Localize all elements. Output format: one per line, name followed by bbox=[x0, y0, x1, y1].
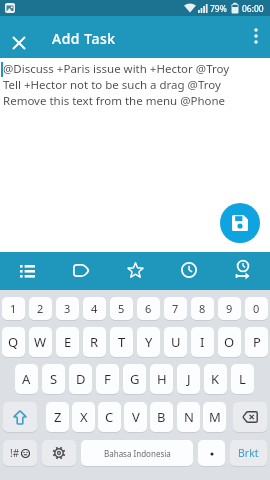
staticText: 4 bbox=[91, 301, 98, 316]
staticText: B bbox=[157, 408, 166, 426]
button[interactable]: L bbox=[231, 364, 254, 394]
button[interactable]: 8 bbox=[191, 297, 214, 320]
button[interactable]: T bbox=[110, 327, 133, 357]
staticText: V bbox=[132, 408, 140, 426]
staticText: J bbox=[187, 370, 191, 388]
staticText: Z bbox=[54, 408, 62, 426]
staticText: 3 bbox=[64, 301, 71, 316]
staticText: W bbox=[34, 333, 47, 351]
staticText: Q bbox=[8, 333, 19, 351]
button[interactable]: V bbox=[124, 402, 147, 432]
staticText: F bbox=[104, 370, 111, 388]
button[interactable]: F bbox=[96, 364, 119, 394]
button[interactable]: Y bbox=[137, 327, 160, 357]
staticText: H bbox=[157, 370, 167, 388]
staticText: 1 bbox=[10, 301, 17, 316]
button[interactable]: E bbox=[56, 327, 79, 357]
staticText: 7 bbox=[172, 301, 179, 316]
button[interactable]: 1 bbox=[2, 297, 25, 320]
button[interactable] bbox=[229, 256, 257, 284]
button[interactable]: A bbox=[15, 364, 38, 394]
button[interactable]: 4 bbox=[83, 297, 106, 320]
button[interactable]: I bbox=[191, 327, 214, 357]
staticText: 06:00 bbox=[242, 3, 264, 15]
staticText: U bbox=[171, 333, 181, 351]
staticText: E bbox=[64, 333, 72, 351]
staticText: M bbox=[209, 408, 221, 426]
staticText: G bbox=[130, 370, 140, 388]
button[interactable] bbox=[67, 256, 95, 284]
button[interactable] bbox=[175, 256, 203, 284]
button[interactable] bbox=[220, 203, 260, 243]
staticText: O bbox=[224, 333, 235, 351]
button[interactable]: 6 bbox=[137, 297, 160, 320]
button[interactable]: D bbox=[69, 364, 92, 394]
button[interactable]: R bbox=[83, 327, 106, 357]
button[interactable]: G bbox=[123, 364, 146, 394]
staticText: S bbox=[50, 370, 58, 388]
staticText: T bbox=[118, 333, 126, 351]
button[interactable] bbox=[233, 402, 267, 432]
button[interactable]: B bbox=[150, 402, 173, 432]
staticText: 2 bbox=[37, 301, 44, 316]
staticText: I bbox=[200, 333, 205, 351]
button[interactable]: H bbox=[150, 364, 173, 394]
staticText: Remove this text from the menu @Phone bbox=[3, 93, 226, 109]
button[interactable]: Z bbox=[46, 402, 69, 432]
button[interactable]: P bbox=[245, 327, 268, 357]
button[interactable] bbox=[6, 30, 32, 56]
staticText: 8 bbox=[199, 301, 206, 316]
button[interactable]: Bahasa Indonesia bbox=[81, 440, 193, 466]
button[interactable]: 5 bbox=[110, 297, 133, 320]
staticText: !# bbox=[10, 446, 20, 460]
button[interactable]: !# bbox=[3, 440, 37, 466]
staticText: A bbox=[22, 370, 31, 388]
button[interactable]: 2 bbox=[29, 297, 52, 320]
button[interactable]: U bbox=[164, 327, 187, 357]
staticText: D bbox=[76, 370, 86, 388]
staticText: R bbox=[90, 333, 99, 351]
staticText: L bbox=[239, 370, 246, 388]
button[interactable]: O bbox=[218, 327, 241, 357]
button[interactable]: J bbox=[177, 364, 200, 394]
button[interactable]: N bbox=[177, 402, 200, 432]
staticText: P bbox=[253, 333, 261, 351]
staticText: C bbox=[105, 408, 114, 426]
button[interactable]: 7 bbox=[164, 297, 187, 320]
button[interactable] bbox=[13, 256, 41, 284]
staticText: X bbox=[80, 408, 88, 426]
button[interactable] bbox=[121, 256, 149, 284]
staticText: Tell +Hector not to be such a drag @Troy bbox=[3, 77, 221, 93]
button[interactable]: 9 bbox=[218, 297, 241, 320]
button[interactable]: M bbox=[203, 402, 226, 432]
button[interactable]: Q bbox=[2, 327, 25, 357]
staticText: 0 bbox=[253, 301, 260, 316]
staticText: Y bbox=[145, 333, 153, 351]
staticText: Bahasa Indonesia bbox=[104, 448, 171, 459]
button[interactable]: W bbox=[29, 327, 52, 357]
button[interactable]: 0 bbox=[245, 297, 268, 320]
staticText: 79% bbox=[210, 3, 227, 15]
staticText: 6 bbox=[145, 301, 152, 316]
button[interactable] bbox=[42, 440, 76, 466]
button[interactable]: S bbox=[42, 364, 65, 394]
button[interactable]: Brkt bbox=[230, 440, 267, 466]
button[interactable]: X bbox=[72, 402, 95, 432]
button[interactable]: K bbox=[204, 364, 227, 394]
button[interactable]: C bbox=[98, 402, 121, 432]
button[interactable] bbox=[244, 24, 268, 48]
staticText: N bbox=[184, 408, 194, 426]
button[interactable]: 3 bbox=[56, 297, 79, 320]
staticText: Add Task bbox=[52, 29, 116, 48]
staticText: K bbox=[211, 370, 220, 388]
button[interactable] bbox=[3, 402, 37, 432]
staticText: 5 bbox=[118, 301, 125, 316]
staticText: 9 bbox=[226, 301, 233, 316]
button[interactable] bbox=[198, 440, 225, 466]
staticText: Brkt bbox=[238, 446, 259, 460]
staticText: @Discuss +Paris issue with +Hector @Troy bbox=[3, 61, 230, 77]
